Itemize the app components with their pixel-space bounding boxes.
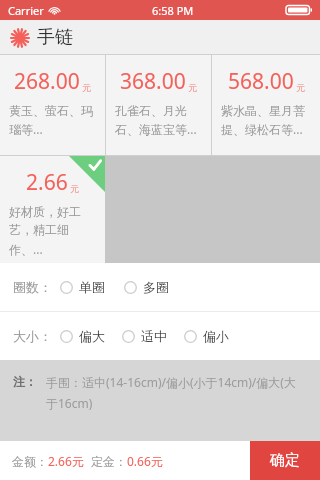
staticText: 偏小: [203, 328, 229, 344]
button[interactable]: 适中: [119, 323, 170, 349]
staticText: 368.00: [120, 67, 186, 96]
staticText: 黄玉、萤石、玛瑙等...: [9, 103, 96, 137]
staticText: 注：: [13, 374, 37, 389]
staticText: 好材质，好工艺，精工细作、...: [9, 204, 96, 257]
staticText: 568.00: [228, 67, 294, 96]
staticText: 紫水晶、星月菩提、绿松石等...: [221, 103, 311, 137]
staticText: 268.00: [14, 67, 80, 96]
staticText: 适中: [141, 328, 167, 344]
staticText: 元: [296, 82, 305, 93]
button[interactable]: 2.66: [0, 156, 105, 263]
staticText: 圈数：: [13, 279, 52, 295]
button[interactable]: 368.00: [106, 55, 211, 155]
staticText: 大小：: [13, 328, 52, 344]
staticText: 6:58 PM: [152, 3, 194, 18]
button[interactable]: 268.00: [0, 55, 105, 155]
staticText: 确定: [270, 451, 300, 470]
staticText: 单圈: [79, 279, 105, 295]
button[interactable]: 568.00: [212, 55, 320, 155]
staticText: 偏大: [79, 328, 105, 344]
other: Selected: [69, 156, 105, 192]
staticText: 2.66元: [48, 453, 84, 469]
button[interactable]: 偏大: [57, 323, 108, 349]
staticText: 金额：: [12, 454, 48, 469]
button[interactable]: 多圈: [121, 274, 172, 300]
staticText: 元: [82, 82, 91, 93]
staticText: 手围：适中(14-16cm)/偏小(小于14cm)/偏大(大于16cm): [46, 374, 305, 411]
staticText: 元: [70, 183, 79, 194]
button[interactable]: 确定: [250, 441, 320, 480]
staticText: Carrier: [8, 3, 44, 18]
button[interactable]: 单圈: [57, 274, 108, 300]
staticText: 定金：: [91, 454, 127, 469]
button[interactable]: 偏小: [181, 323, 232, 349]
staticText: 元: [188, 82, 197, 93]
staticText: 多圈: [143, 279, 169, 295]
staticText: 手链: [37, 26, 73, 49]
staticText: 2.66: [26, 168, 68, 197]
staticText: 孔雀石、月光石、海蓝宝等...: [115, 103, 202, 137]
staticText: 0.66元: [127, 453, 163, 469]
